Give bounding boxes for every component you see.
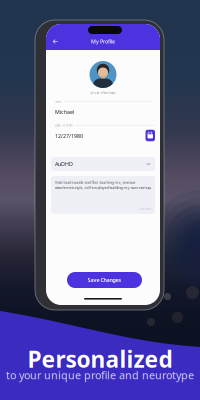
staticText: Michael: [55, 108, 74, 116]
button[interactable]: AuDHD: [51, 157, 155, 171]
staticText: Date of Birth: [55, 124, 73, 127]
button[interactable]: Profile photo: [89, 61, 116, 88]
staticText: Personalized: [27, 344, 172, 374]
staticText: Save Changes: [87, 276, 121, 284]
staticText: 12/27/1980: [55, 132, 83, 140]
button[interactable]: Pick date: [145, 130, 155, 141]
staticText: Hate loud sounds and flies touching me, …: [54, 179, 151, 190]
button[interactable]: Upload a New Image: [46, 90, 160, 96]
staticText: Name: [55, 100, 62, 103]
staticText: 104/500: [138, 207, 151, 210]
staticText: AuDHD: [55, 160, 73, 168]
button[interactable]: Save Changes: [67, 272, 142, 288]
staticText: Upload a New Image: [89, 91, 116, 95]
button[interactable]: Back: [50, 36, 61, 47]
staticText: to your unique profile and neurotype: [6, 368, 194, 382]
staticText: My Profile: [91, 38, 115, 45]
